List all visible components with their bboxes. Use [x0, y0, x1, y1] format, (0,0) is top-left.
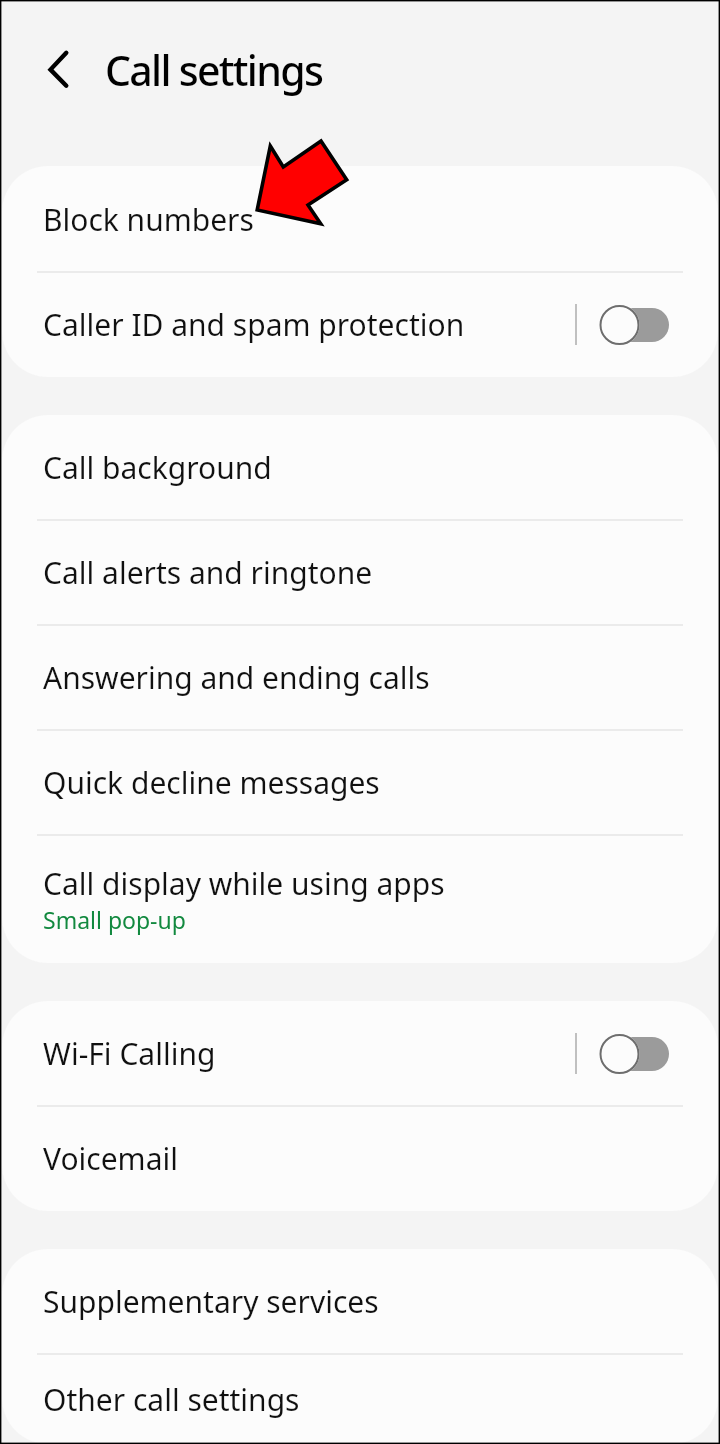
staticText: Other call settings [43, 1379, 300, 1420]
staticText: Caller ID and spam protection [43, 304, 465, 345]
staticText: Small pop-up [43, 904, 186, 935]
button[interactable]: Back [24, 41, 82, 99]
button[interactable]: Wi-Fi Calling [2, 1001, 718, 1106]
button[interactable]: Supplementary services [2, 1249, 718, 1354]
button[interactable]: Answering and ending calls [2, 625, 718, 730]
button[interactable]: Other call settings [2, 1354, 718, 1444]
button[interactable]: Caller ID and spam protection [2, 272, 718, 377]
staticText: Call settings [105, 42, 323, 98]
staticText: Supplementary services [43, 1281, 379, 1322]
button[interactable]: Toggle Caller ID and spam protection [599, 304, 670, 346]
staticText: Call display while using apps [43, 863, 445, 904]
button[interactable]: Quick decline messages [2, 730, 718, 835]
staticText: Block numbers [43, 199, 254, 240]
staticText: Quick decline messages [43, 762, 380, 803]
staticText: Call background [43, 447, 272, 488]
button[interactable]: Block numbers [2, 166, 718, 272]
button[interactable]: Toggle Wi-Fi Calling [599, 1033, 670, 1075]
staticText: Call alerts and ringtone [43, 552, 373, 593]
staticText: Voicemail [43, 1138, 178, 1179]
staticText: Wi-Fi Calling [43, 1033, 216, 1074]
button[interactable]: Call display while using apps [2, 835, 718, 963]
button[interactable]: Voicemail [2, 1106, 718, 1211]
button[interactable]: Call alerts and ringtone [2, 520, 718, 625]
button[interactable]: Call background [2, 415, 718, 520]
staticText: Answering and ending calls [43, 657, 430, 698]
